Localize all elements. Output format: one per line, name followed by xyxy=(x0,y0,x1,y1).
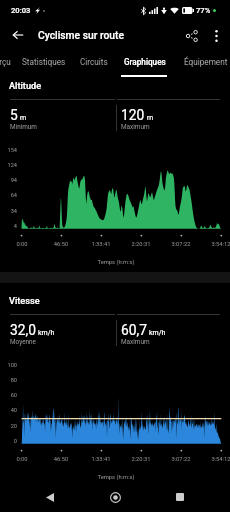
button[interactable]: Graphiques xyxy=(116,48,174,75)
staticText: 3:54:12 xyxy=(201,241,230,248)
staticText: 40 xyxy=(0,407,17,414)
staticText: Cyclisme sur route xyxy=(38,29,124,41)
staticText: 0 xyxy=(0,438,17,445)
staticText: 64 xyxy=(0,192,17,199)
staticText: 20 xyxy=(0,423,17,430)
staticText: Maximum xyxy=(121,338,150,346)
button[interactable]: Applications récentes xyxy=(165,482,195,512)
staticText: 4 xyxy=(0,223,17,230)
staticText: 1:33:41 xyxy=(81,456,121,463)
staticText: Minimum xyxy=(10,123,37,131)
button[interactable]: Équipement xyxy=(176,48,230,75)
staticText: Circuits xyxy=(80,57,108,67)
button[interactable]: Retour xyxy=(5,22,31,48)
staticText: 2:20:31 xyxy=(121,241,161,248)
staticText: 46:50 xyxy=(41,456,81,463)
staticText: Altitude xyxy=(9,80,42,91)
staticText: 46:50 xyxy=(41,241,81,248)
button[interactable]: Statistiques xyxy=(15,48,72,75)
staticText: Maximum xyxy=(121,123,150,131)
staticText: 3:07:22 xyxy=(161,241,201,248)
staticText: km/h xyxy=(149,329,166,337)
staticText: m xyxy=(147,114,154,122)
button[interactable]: Circuits xyxy=(71,48,117,75)
button[interactable]: Retour xyxy=(35,482,65,512)
staticText: 34 xyxy=(0,208,17,215)
staticText: 94 xyxy=(0,177,17,184)
staticText: Statistiques xyxy=(22,57,66,67)
staticText: 124 xyxy=(0,162,17,169)
staticText: 154 xyxy=(0,147,17,154)
staticText: 20:03 xyxy=(11,6,31,15)
staticText: 1:33:41 xyxy=(81,241,121,248)
staticText: Aperçu xyxy=(0,57,11,67)
staticText: 3:54:12 xyxy=(201,456,230,463)
staticText: Graphiques xyxy=(124,57,166,67)
staticText: 0:00 xyxy=(2,241,42,248)
staticText: 60 xyxy=(0,392,17,399)
staticText: 100 xyxy=(0,362,17,369)
staticText: Temps (h:m:s) xyxy=(76,474,156,481)
staticText: 0:00 xyxy=(2,456,42,463)
staticText: Équipement xyxy=(184,57,228,67)
staticText: m xyxy=(20,114,27,122)
staticText: 80 xyxy=(0,377,17,384)
staticText: 2:20:31 xyxy=(121,456,161,463)
staticText: km/h xyxy=(38,329,55,337)
staticText: 60,7 xyxy=(121,322,147,338)
staticText: 120 xyxy=(121,107,145,123)
button[interactable]: Aperçu xyxy=(0,48,17,75)
button[interactable]: Partager xyxy=(179,23,205,49)
staticText: Vitesse xyxy=(9,295,40,306)
button[interactable]: Plus d'options xyxy=(205,23,230,49)
staticText: 77% xyxy=(196,6,211,15)
button[interactable]: Accueil xyxy=(100,482,130,512)
staticText: 5 xyxy=(10,107,18,123)
staticText: Temps (h:m:s) xyxy=(76,259,156,266)
staticText: 3:07:22 xyxy=(161,456,201,463)
staticText: Moyenne xyxy=(10,338,36,346)
staticText: 32,0 xyxy=(10,322,36,338)
